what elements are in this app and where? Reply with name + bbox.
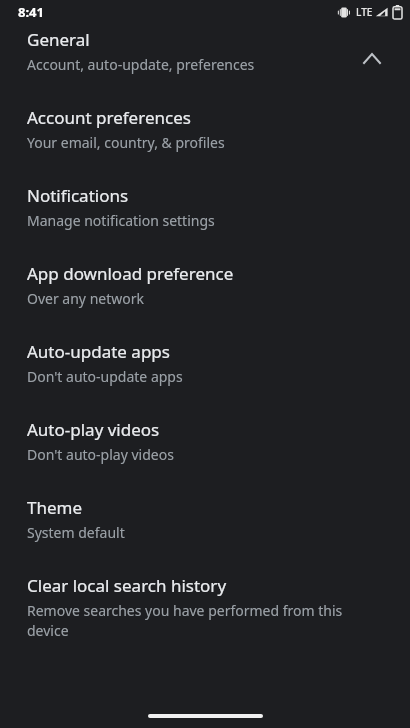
button[interactable]: Theme [0,464,410,542]
button[interactable]: Notifications [0,152,410,230]
staticText: App download preference [27,262,234,285]
other: Collapse General section [354,40,390,76]
staticText: Auto-update apps [27,340,170,363]
staticText: Your email, country, & profiles [27,133,225,152]
button[interactable]: General [0,24,410,74]
button[interactable]: Auto-play videos [0,386,410,464]
staticText: System default [27,523,125,542]
staticText: Theme [27,496,83,519]
button[interactable]: Auto-update apps [0,308,410,386]
button[interactable]: App download preference [0,230,410,308]
staticText: Remove searches you have performed from … [27,601,361,640]
staticText: General [27,28,90,51]
staticText: Over any network [27,289,144,308]
staticText: Notifications [27,184,129,207]
button[interactable]: Clear local search history [0,542,410,640]
staticText: Auto-play videos [27,418,160,441]
staticText: Don't auto-play videos [27,445,174,464]
staticText: Clear local search history [27,574,227,597]
staticText: Account preferences [27,106,191,129]
button[interactable]: Account preferences [0,74,410,152]
staticText: Don't auto-update apps [27,367,183,386]
staticText: Manage notification settings [27,211,215,230]
staticText: LTE [356,5,373,19]
staticText: 8:41 [18,3,44,21]
staticText: Account, auto-update, preferences [27,55,255,74]
